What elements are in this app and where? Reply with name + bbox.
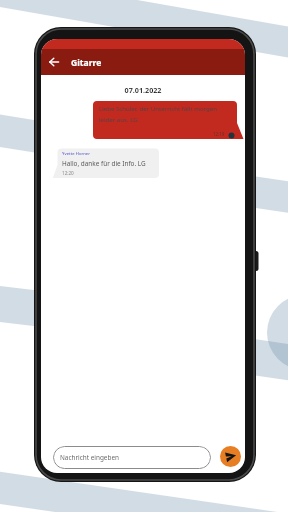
staticText: Hallo, danke für die Info. LG bbox=[62, 159, 146, 168]
button[interactable] bbox=[220, 446, 241, 467]
staticText: 12:19 bbox=[213, 131, 225, 137]
button[interactable]: Nachricht eingeben bbox=[53, 446, 211, 469]
staticText: Nachricht eingeben bbox=[60, 453, 119, 462]
button[interactable] bbox=[46, 54, 62, 70]
staticText: Liebe Schüler, der Unterricht fällt morg… bbox=[99, 104, 217, 112]
staticText: 12:20 bbox=[62, 170, 74, 176]
staticText: 07.01.2022 bbox=[41, 85, 245, 95]
staticText: Yvette Horner bbox=[62, 151, 91, 157]
staticText: leider aus. LG bbox=[99, 115, 138, 123]
staticText: Gitarre bbox=[71, 57, 102, 69]
